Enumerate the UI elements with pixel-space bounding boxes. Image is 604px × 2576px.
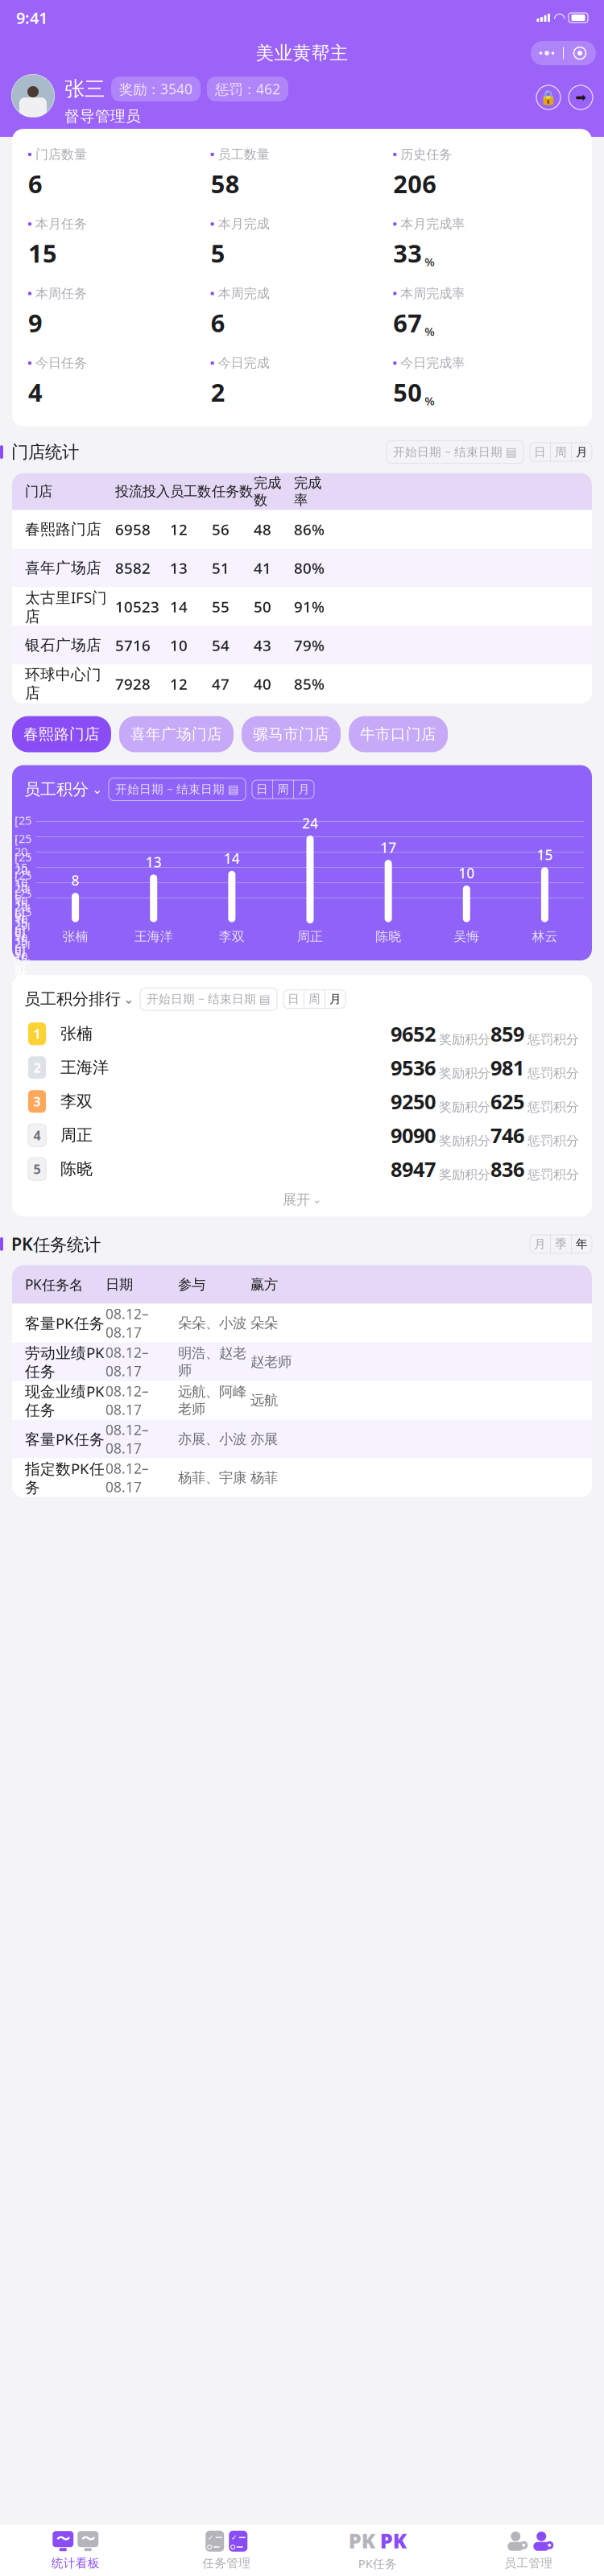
staticText: 8582	[115, 558, 151, 578]
staticText: 投流投入	[115, 483, 170, 500]
staticText: 春熙路门店	[25, 520, 101, 539]
staticText: PK	[380, 2527, 407, 2554]
staticText: 惩罚积分	[527, 1099, 579, 1115]
staticText: 远航	[250, 1392, 278, 1409]
staticText: 月	[576, 445, 588, 459]
staticText: PK任务统计	[11, 1233, 101, 1255]
staticText: 门店统计	[11, 442, 79, 463]
button[interactable]: 5	[12, 1152, 592, 1186]
staticText: 〜	[56, 2531, 70, 2548]
button[interactable]: 月	[325, 990, 345, 1008]
staticText: 年	[576, 1237, 588, 1251]
button[interactable]: 周	[304, 990, 325, 1008]
button[interactable]: 3	[12, 1084, 592, 1118]
staticText: ◠	[554, 10, 565, 26]
staticText: [25, 20, 15, 10, 5, 0][i]	[14, 867, 31, 993]
button[interactable]: Close	[564, 41, 596, 65]
button[interactable]: 骡马市门店	[242, 716, 341, 752]
staticText: 客量PK任务	[25, 1313, 105, 1333]
staticText: 🔒	[540, 89, 557, 105]
button[interactable]: 月	[294, 780, 314, 799]
staticText: ➡	[575, 90, 586, 105]
staticText: 9652	[391, 1020, 436, 1047]
staticText: 远航、阿峰老师	[178, 1383, 246, 1418]
staticText: ~	[445, 445, 451, 459]
button[interactable]: 1	[12, 1017, 592, 1051]
staticText: 结束日期	[176, 782, 225, 797]
staticText: 今日完成率	[400, 355, 465, 371]
staticText: 奖励积分	[439, 1099, 490, 1115]
button[interactable]: 日	[252, 780, 272, 799]
staticText: 67	[393, 306, 422, 339]
staticText: 08.12–08.17	[105, 1343, 149, 1380]
staticText: 环球中心门店	[25, 665, 101, 702]
button[interactable]: PK	[302, 2530, 453, 2571]
button[interactable]: 员工积分排行	[24, 989, 134, 1009]
staticText: 08.12–08.17	[105, 1382, 149, 1419]
staticText: 牛市口门店	[360, 725, 436, 743]
button[interactable]: 日	[530, 443, 550, 461]
button[interactable]: 牛市口门店	[349, 716, 448, 752]
button[interactable]: Log out	[569, 85, 593, 109]
staticText: 3	[33, 1093, 41, 1110]
staticText: 开始日期	[147, 992, 195, 1006]
staticText: 12	[170, 674, 188, 694]
button[interactable]: ✓	[151, 2530, 302, 2571]
button[interactable]: 开始日期	[140, 988, 277, 1010]
staticText: 月	[329, 992, 341, 1006]
staticText: 朵朵	[250, 1315, 278, 1332]
staticText: 指定数PK任务	[25, 1458, 105, 1497]
staticText: PK	[349, 2527, 375, 2554]
button[interactable]: 日	[283, 990, 304, 1008]
staticText: 奖励积分	[439, 1031, 490, 1047]
staticText: ⌄	[312, 1193, 321, 1206]
staticText: 惩罚积分	[527, 1065, 579, 1081]
staticText: 惩罚积分	[527, 1133, 579, 1149]
staticText: 骡马市门店	[253, 725, 329, 743]
staticText: 结束日期	[454, 445, 503, 459]
staticText: 任务管理	[202, 2556, 251, 2571]
staticText: [25, 20, 15, 10, 5, 0][i]	[14, 904, 31, 1029]
staticText: 展开	[283, 1191, 310, 1208]
button[interactable]: 月	[572, 443, 592, 461]
staticText: 银石广场店	[25, 636, 101, 654]
staticText: 陈晓	[60, 1159, 93, 1179]
staticText: %	[425, 393, 434, 409]
button[interactable]: 〜	[0, 2530, 151, 2571]
staticText: 日	[288, 992, 300, 1006]
staticText: 员工数	[170, 483, 211, 500]
staticText: 任务数	[212, 483, 253, 500]
staticText: 员工管理	[504, 2556, 553, 2571]
staticText: 门店数量	[35, 147, 87, 162]
button[interactable]: 员工管理	[453, 2530, 604, 2571]
staticText: PK任务名	[25, 1275, 83, 1294]
staticText: 43	[254, 635, 271, 655]
staticText: 朵朵、小波	[178, 1315, 246, 1332]
staticText: 张楠	[62, 929, 88, 944]
button[interactable]: 喜年广场门店	[119, 716, 234, 752]
button[interactable]: Lock	[536, 85, 561, 109]
staticText: ▤	[506, 445, 517, 459]
button[interactable]: 月	[530, 1235, 550, 1253]
button[interactable]: 4	[12, 1118, 592, 1152]
staticText: 本月完成率	[400, 216, 465, 232]
button[interactable]: 展开	[12, 1186, 592, 1213]
staticText: 吴悔	[454, 929, 479, 944]
button[interactable]: 周	[551, 443, 571, 461]
staticText: ~	[167, 782, 173, 796]
staticText: 惩罚积分	[527, 1167, 579, 1183]
button[interactable]: 2	[12, 1051, 592, 1084]
staticText: 6	[211, 306, 225, 339]
button[interactable]: 季	[551, 1235, 571, 1253]
button[interactable]: 周	[273, 780, 293, 799]
button[interactable]: More	[531, 41, 563, 65]
button[interactable]: 春熙路门店	[12, 716, 111, 752]
button[interactable]: 开始日期	[387, 441, 523, 463]
staticText: 9	[28, 306, 43, 339]
staticText: 月	[534, 1237, 546, 1251]
staticText: 结束日期	[208, 992, 256, 1006]
button[interactable]: 年	[572, 1235, 592, 1253]
button[interactable]: 开始日期	[109, 778, 246, 801]
staticText: 周	[277, 782, 289, 797]
button[interactable]: 员工积分	[24, 779, 102, 799]
